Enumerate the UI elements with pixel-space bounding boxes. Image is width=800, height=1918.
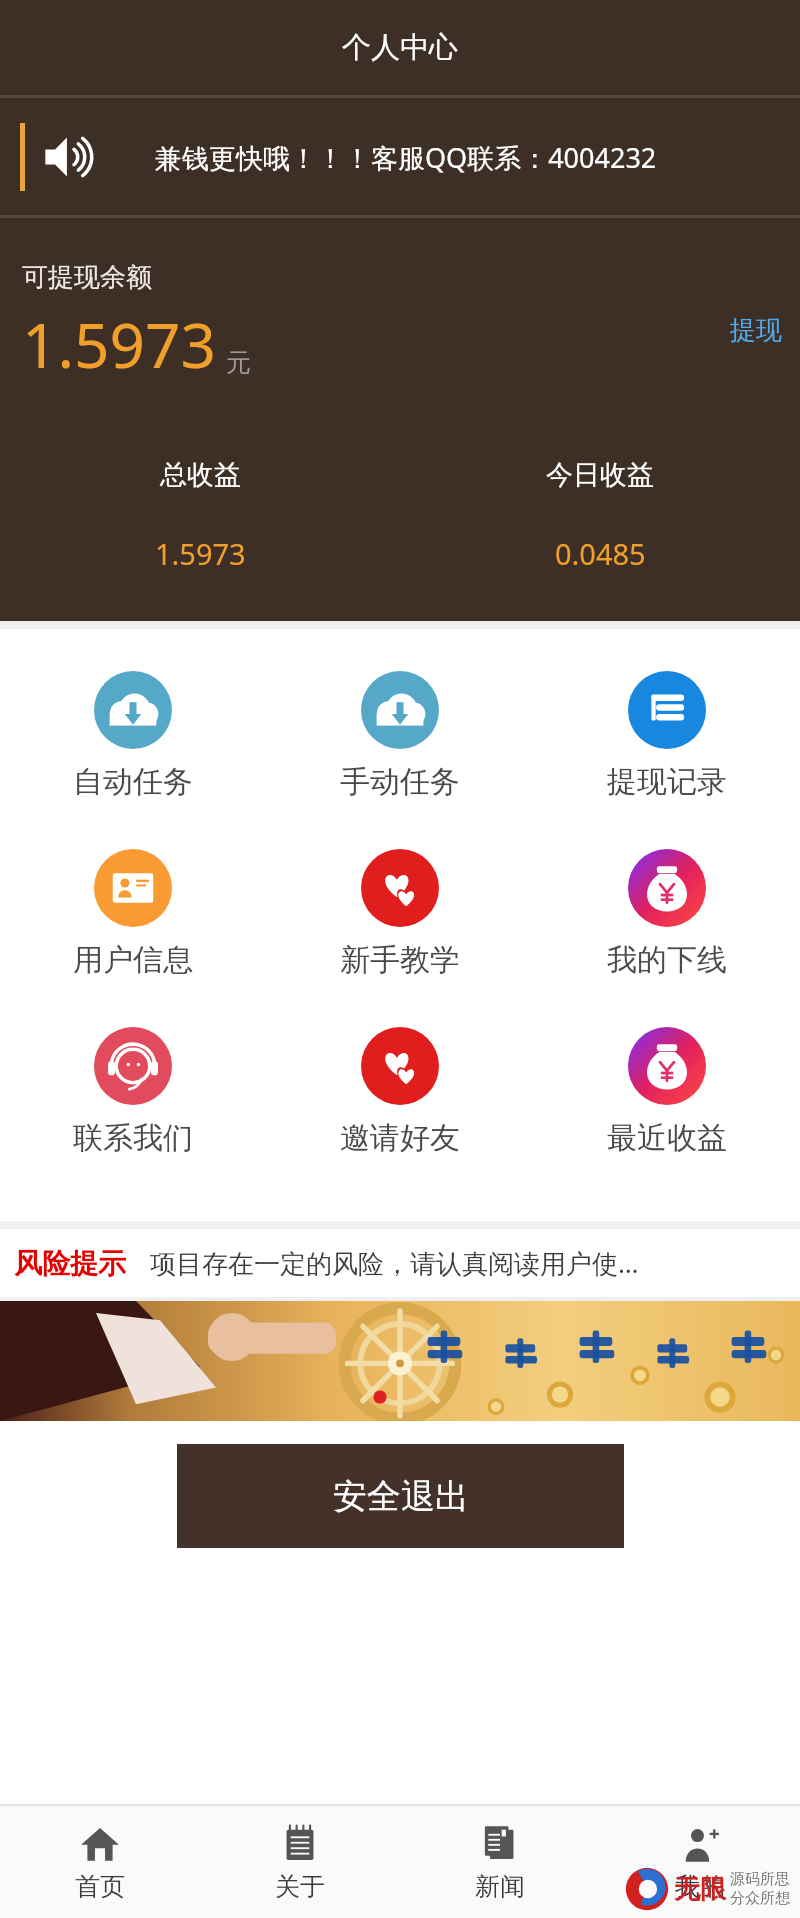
staticText: 首页: [75, 1871, 125, 1902]
staticText: 总收益: [160, 458, 241, 492]
staticText: 无限: [674, 1873, 726, 1906]
staticText: 项目存在一定的风险，请认真阅读用户使…: [150, 1245, 639, 1281]
staticText: 新手教学: [340, 941, 460, 979]
staticText: 最近收益: [607, 1119, 727, 1157]
staticText: 联系我们: [73, 1119, 193, 1157]
button[interactable]: 新闻: [400, 1806, 600, 1918]
staticText: 今日收益: [546, 458, 654, 492]
button[interactable]: 自动任务: [0, 671, 266, 801]
staticText: 安全退出: [333, 1475, 469, 1518]
other: Announcement: [41, 130, 95, 184]
staticText: 源码所思: [730, 1870, 790, 1889]
staticText: 邀请好友: [340, 1119, 460, 1157]
staticText: 新闻: [475, 1871, 525, 1902]
staticText: 提现记录: [607, 763, 727, 801]
staticText: 自动任务: [73, 763, 193, 801]
staticText: 0.0485: [555, 534, 646, 573]
staticText: 可提现余额: [22, 261, 152, 294]
button[interactable]: 今日收益: [400, 458, 800, 573]
button[interactable]: 手动任务: [266, 671, 533, 801]
button[interactable]: 联系我们: [0, 1027, 266, 1157]
button[interactable]: 总收益: [0, 458, 400, 573]
staticText: 用户信息: [73, 941, 193, 979]
button[interactable]: 风险提示: [0, 1229, 800, 1297]
staticText: 兼钱更快哦！！！客服QQ联系：4004232: [155, 139, 657, 176]
staticText: 风险提示: [14, 1246, 126, 1281]
button[interactable]: 安全退出: [177, 1444, 624, 1548]
button[interactable]: 首页: [0, 1806, 200, 1918]
button[interactable]: 用户信息: [0, 849, 266, 979]
staticText: 元: [226, 347, 251, 378]
staticText: 我的: [675, 1871, 725, 1902]
button[interactable]: Announcement: [0, 98, 800, 215]
staticText: 分众所想: [730, 1889, 790, 1908]
button[interactable]: 新手教学: [266, 849, 533, 979]
button[interactable]: 关于: [200, 1806, 400, 1918]
staticText: 个人中心: [342, 29, 458, 66]
button[interactable]: 最近收益: [533, 1027, 800, 1157]
staticText: 手动任务: [340, 763, 460, 801]
staticText: 1.5973: [22, 302, 216, 386]
button[interactable]: 提现: [712, 306, 800, 355]
button[interactable]: Promotion banner: [0, 1301, 800, 1421]
staticText: 1.5973: [155, 534, 246, 573]
button[interactable]: 提现记录: [533, 671, 800, 801]
staticText: 我的下线: [607, 941, 727, 979]
staticText: 关于: [275, 1871, 325, 1902]
button[interactable]: 邀请好友: [266, 1027, 533, 1157]
staticText: 提现: [730, 314, 782, 347]
button[interactable]: 我的: [600, 1806, 800, 1918]
button[interactable]: 我的下线: [533, 849, 800, 979]
